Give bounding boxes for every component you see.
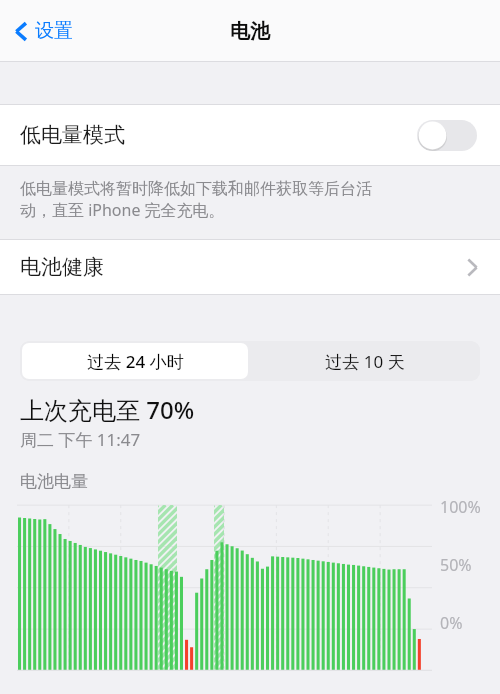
staticText: 低电量模式 bbox=[20, 122, 125, 148]
staticText: 设置 bbox=[35, 19, 73, 43]
staticText: 电池 bbox=[230, 19, 270, 44]
staticText: 过去 24 小时 bbox=[87, 350, 184, 373]
button[interactable]: 电池健康 bbox=[0, 239, 500, 295]
staticText: 50% bbox=[440, 554, 472, 576]
button[interactable]: Low Power Mode toggle bbox=[417, 120, 477, 151]
staticText: 上次充电至 70% bbox=[20, 393, 195, 426]
staticText: 周二 下午 11:47 bbox=[20, 428, 141, 451]
staticText: 100% bbox=[440, 496, 481, 518]
staticText: 电池健康 bbox=[20, 254, 104, 280]
staticText: 电池电量 bbox=[20, 471, 88, 492]
button[interactable]: 设置 bbox=[8, 11, 79, 51]
button[interactable]: 低电量模式 bbox=[0, 104, 500, 166]
staticText: 动，直至 iPhone 完全充电。 bbox=[20, 199, 225, 221]
button[interactable]: 过去 10 天 bbox=[250, 341, 480, 381]
staticText: 过去 10 天 bbox=[325, 350, 405, 373]
button[interactable]: 过去 24 小时 bbox=[22, 343, 248, 379]
staticText: 低电量模式将暂时降低如下载和邮件获取等后台活 bbox=[20, 179, 372, 199]
staticText: 0% bbox=[440, 612, 463, 634]
